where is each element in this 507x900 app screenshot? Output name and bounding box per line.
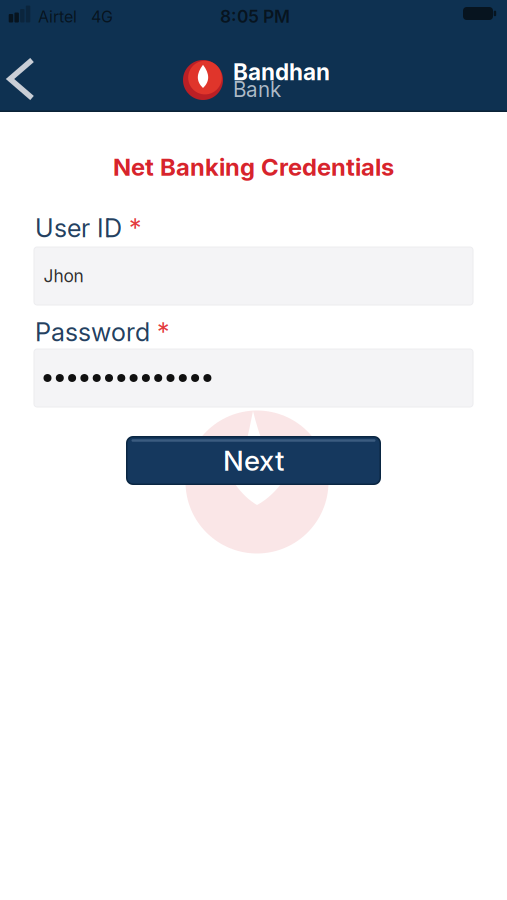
staticText: Next [223, 444, 284, 477]
staticText: Bandhan [233, 58, 330, 86]
staticText: 8:05 PM [220, 6, 290, 27]
staticText: 4G [91, 7, 113, 26]
button[interactable]: User ID text field [0, 247, 507, 305]
staticText: Bank [233, 77, 281, 102]
staticText: Net Banking Credentials [113, 152, 394, 181]
button[interactable]: Back [0, 49, 44, 109]
staticText: Jhon [43, 265, 83, 286]
staticText: * [150, 317, 169, 347]
button[interactable]: Password text field [0, 349, 507, 407]
staticText: Airtel [38, 7, 77, 26]
staticText: User ID [35, 213, 122, 243]
button[interactable]: Next [126, 436, 381, 485]
staticText: * [122, 213, 141, 243]
staticText: Password [35, 317, 150, 347]
